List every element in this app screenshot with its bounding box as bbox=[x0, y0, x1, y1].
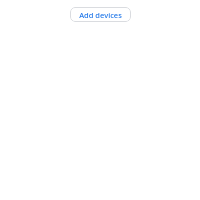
staticText: Add devices bbox=[79, 10, 122, 20]
button[interactable]: Add devices bbox=[70, 7, 131, 22]
